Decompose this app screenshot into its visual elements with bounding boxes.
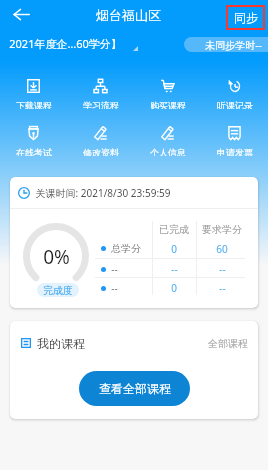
staticText: 0: [171, 242, 177, 256]
staticText: 0: [171, 281, 177, 295]
staticText: 购买课程: [150, 100, 186, 109]
staticText: 未同步学时--: [205, 38, 262, 52]
staticText: 下载课程: [16, 100, 52, 109]
staticText: 烟台福山区: [96, 7, 161, 23]
button[interactable]: 购买课程: [134, 62, 201, 109]
staticText: 听课记录: [217, 100, 253, 109]
staticText: 已完成: [159, 223, 189, 236]
staticText: 查看全部课程: [99, 381, 171, 396]
staticText: --: [171, 262, 178, 276]
staticText: --: [219, 281, 226, 295]
button[interactable]: 听课记录: [201, 62, 268, 109]
staticText: 学习流程: [83, 100, 119, 109]
staticText: 全部课程: [208, 337, 248, 350]
staticText: 个人信息: [150, 147, 186, 156]
staticText: 总学分: [111, 242, 141, 255]
staticText: 同步: [234, 10, 258, 25]
staticText: 要求学分: [202, 223, 242, 236]
staticText: 0%: [43, 244, 70, 270]
staticText: 在线考试: [16, 147, 52, 156]
button[interactable]: 查看全部课程: [79, 371, 190, 406]
button[interactable]: 未同步学时--: [184, 37, 268, 52]
staticText: 我的课程: [37, 336, 85, 351]
button[interactable]: 申请发票: [201, 109, 268, 156]
button[interactable]: 修改资料: [67, 109, 134, 156]
staticText: --: [219, 262, 226, 276]
button[interactable]: 在线考试: [0, 109, 67, 156]
staticText: 关课时间: 2021/8/30 23:59:59: [35, 186, 171, 200]
staticText: 60: [216, 242, 228, 256]
button[interactable]: 下载课程: [0, 62, 67, 109]
button[interactable]: 学习流程: [67, 62, 134, 109]
staticText: 修改资料: [83, 147, 119, 156]
staticText: 2021年度企…60学分】: [9, 36, 122, 51]
staticText: --: [111, 262, 118, 276]
staticText: 完成度: [43, 284, 73, 297]
button[interactable]: Back: [7, 0, 35, 28]
button[interactable]: 同步: [226, 5, 265, 30]
staticText: 申请发票: [217, 147, 253, 156]
button[interactable]: 个人信息: [134, 109, 201, 156]
button[interactable]: 全部课程: [208, 337, 248, 350]
staticText: --: [111, 281, 118, 295]
